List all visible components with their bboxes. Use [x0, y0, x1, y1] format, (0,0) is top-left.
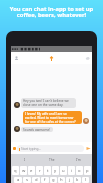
- staticText: d: [35, 177, 38, 183]
- staticText: t: [47, 168, 49, 174]
- staticText: k: [76, 177, 79, 183]
- button[interactable]: q: [12, 166, 19, 175]
- staticText: q: [14, 168, 17, 174]
- staticText: The: [49, 158, 55, 162]
- staticText: e: [30, 168, 33, 174]
- staticText: w: [22, 168, 26, 174]
- staticText: s: [26, 177, 29, 183]
- button[interactable]: j: [66, 177, 73, 183]
- button[interactable]: s: [23, 177, 31, 183]
- button[interactable]: e: [28, 166, 35, 175]
- staticText: h: [60, 177, 63, 183]
- button[interactable]: f: [41, 177, 49, 183]
- staticText: You can chat in-app to set up coffee, be…: [0, 5, 103, 18]
- button[interactable]: h: [58, 177, 65, 183]
- button[interactable]: Camera: [13, 147, 16, 150]
- button[interactable]: g: [50, 177, 57, 183]
- button[interactable]: I'm: [65, 154, 92, 165]
- button[interactable]: I: [11, 154, 38, 165]
- button[interactable]: Start typing...: [17, 145, 84, 152]
- staticText: i: [71, 168, 73, 174]
- button[interactable]: u: [60, 166, 67, 175]
- staticText: Hey you two! I can't believe we close on…: [23, 99, 69, 107]
- staticText: Sounds awesome!: [23, 128, 51, 131]
- button[interactable]: w: [20, 166, 27, 175]
- staticText: p: [86, 168, 89, 174]
- button[interactable]: Hey you two! I can't believe we close on…: [21, 98, 76, 108]
- staticText: u: [62, 168, 65, 174]
- button[interactable]: Send: [86, 146, 91, 151]
- button[interactable]: l: [82, 177, 89, 183]
- button[interactable]: Sounds awesome!: [21, 127, 53, 132]
- staticText: f: [44, 177, 46, 183]
- staticText: r: [39, 168, 41, 174]
- button[interactable]: a: [14, 177, 22, 183]
- staticText: g: [52, 177, 55, 183]
- button[interactable]: The: [38, 154, 65, 165]
- staticText: Start typing...: [21, 147, 42, 151]
- staticText: I'm: [76, 158, 81, 162]
- staticText: y: [54, 168, 57, 174]
- staticText: o: [78, 168, 81, 174]
- button[interactable]: d: [32, 177, 40, 183]
- staticText: j: [69, 177, 71, 183]
- staticText: a: [17, 177, 20, 183]
- button[interactable]: k: [74, 177, 81, 183]
- staticText: l: [85, 177, 87, 183]
- button[interactable]: o: [76, 166, 83, 175]
- button[interactable]: r: [36, 166, 43, 175]
- staticText: I: [24, 158, 26, 162]
- button[interactable]: i: [68, 166, 75, 175]
- button[interactable]: Search: [83, 54, 91, 62]
- button[interactable]: I know! My wife and I are so excited. Wa…: [23, 111, 82, 124]
- button[interactable]: Profile: [12, 54, 20, 62]
- button[interactable]: p: [84, 166, 91, 175]
- button[interactable]: t: [44, 166, 51, 175]
- button[interactable]: y: [52, 166, 59, 175]
- staticText: I know! My wife and I are so excited. Wa…: [25, 112, 76, 123]
